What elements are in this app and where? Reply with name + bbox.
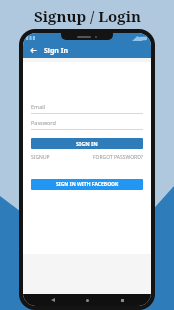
staticText: Email bbox=[31, 103, 46, 110]
staticText: Password bbox=[31, 119, 56, 126]
button[interactable]: FORGOT PASSWORD? bbox=[93, 154, 143, 161]
button[interactable]: Recent apps bbox=[117, 295, 127, 305]
staticText: SIGN IN WITH FACEBOOK bbox=[56, 181, 119, 188]
button[interactable]: SIGN IN bbox=[31, 138, 143, 149]
button[interactable]: SIGN IN WITH FACEBOOK bbox=[31, 179, 143, 190]
button[interactable]: Back bbox=[28, 45, 39, 56]
button[interactable]: Home bbox=[82, 295, 92, 305]
button[interactable]: SIGNUP bbox=[31, 154, 50, 161]
button[interactable]: Password bbox=[31, 119, 143, 130]
staticText: SIGNUP bbox=[31, 154, 50, 161]
staticText: Sign In bbox=[44, 46, 69, 56]
button[interactable]: Email bbox=[31, 103, 143, 114]
staticText: FORGOT PASSWORD? bbox=[93, 154, 143, 161]
button[interactable]: Back bbox=[48, 295, 58, 305]
staticText: SIGN IN bbox=[76, 140, 98, 147]
staticText: Signup / Login bbox=[34, 6, 141, 26]
